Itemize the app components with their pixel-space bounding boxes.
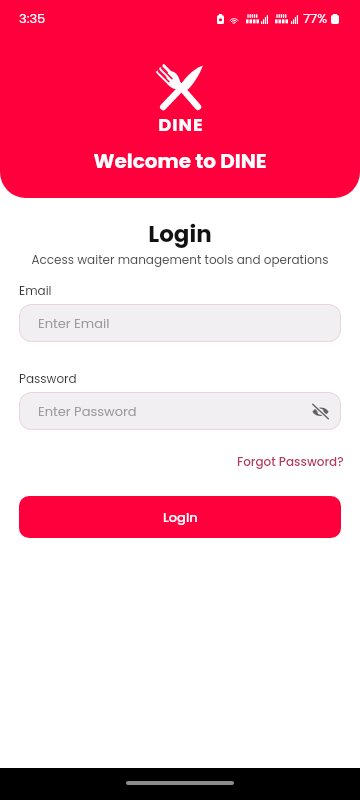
staticText: Forgot Password?	[237, 453, 344, 470]
staticText: Welcome to DINE	[0, 147, 360, 175]
staticText: Access waiter management tools and opera…	[0, 251, 360, 268]
staticText: Login	[0, 218, 360, 250]
staticText: Email	[19, 282, 52, 299]
button[interactable]: Login	[19, 496, 341, 538]
staticText: 77%	[303, 9, 328, 27]
staticText: Password	[19, 370, 77, 387]
staticText: DINE	[1, 112, 360, 137]
staticText: Login	[163, 508, 198, 526]
button[interactable]: Enter Email	[19, 304, 341, 342]
staticText: 3:35	[19, 9, 46, 27]
staticText: Enter Email	[38, 314, 110, 332]
button[interactable]: Show password	[307, 398, 333, 424]
staticText: Enter Password	[38, 402, 137, 420]
button[interactable]: Enter Password	[19, 392, 341, 430]
button[interactable]: Forgot Password?	[235, 451, 346, 472]
